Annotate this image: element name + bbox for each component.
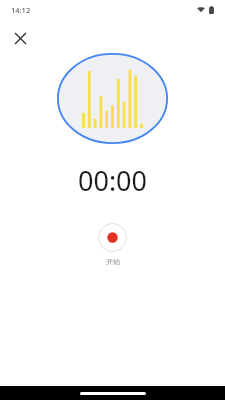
button[interactable]: Close [6, 24, 34, 52]
staticText: 开始 [106, 257, 120, 266]
staticText: 14:12 [11, 5, 31, 15]
staticText: 00:00 [0, 162, 225, 199]
button[interactable]: Start recording [98, 223, 127, 252]
